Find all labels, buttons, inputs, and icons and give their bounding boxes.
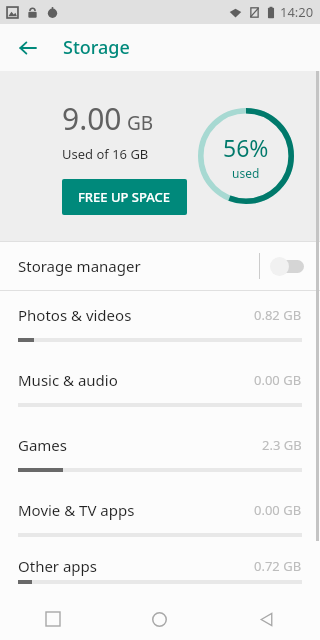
button[interactable]: Photos & videos	[0, 291, 320, 356]
staticText: 0.82 GB	[254, 306, 302, 324]
staticText: 14:20	[280, 3, 314, 21]
staticText: Movie & TV apps	[18, 500, 135, 520]
staticText: GB	[127, 110, 154, 136]
button[interactable]: Home	[106, 598, 213, 640]
button[interactable]: Games	[0, 421, 320, 486]
staticText: 56%	[223, 132, 269, 163]
button[interactable]: FREE UP SPACE	[62, 179, 187, 215]
button[interactable]: Back	[213, 598, 320, 640]
button[interactable]: Recent apps	[0, 598, 106, 640]
button[interactable]: Music & audio	[0, 356, 320, 421]
staticText: Storage	[63, 35, 130, 60]
staticText: FREE UP SPACE	[78, 188, 171, 206]
button[interactable]: Other apps	[0, 551, 320, 598]
staticText: used	[232, 165, 260, 181]
staticText: 9.00	[62, 98, 122, 139]
staticText: 0.00 GB	[254, 501, 302, 519]
staticText: Photos & videos	[18, 305, 132, 325]
staticText: 2.3 GB	[262, 436, 302, 454]
button[interactable]: Back	[8, 28, 48, 68]
button[interactable]: Storage manager	[0, 242, 320, 290]
staticText: Other apps	[18, 556, 98, 576]
button[interactable]: Movie & TV apps	[0, 486, 320, 551]
staticText: 0.00 GB	[254, 371, 302, 389]
staticText: Used of 16 GB	[62, 145, 149, 163]
staticText: 0.72 GB	[254, 557, 302, 575]
button[interactable]: Storage manager toggle	[268, 254, 304, 278]
staticText: Storage manager	[18, 256, 141, 276]
staticText: Games	[18, 435, 68, 455]
staticText: Music & audio	[18, 370, 118, 390]
